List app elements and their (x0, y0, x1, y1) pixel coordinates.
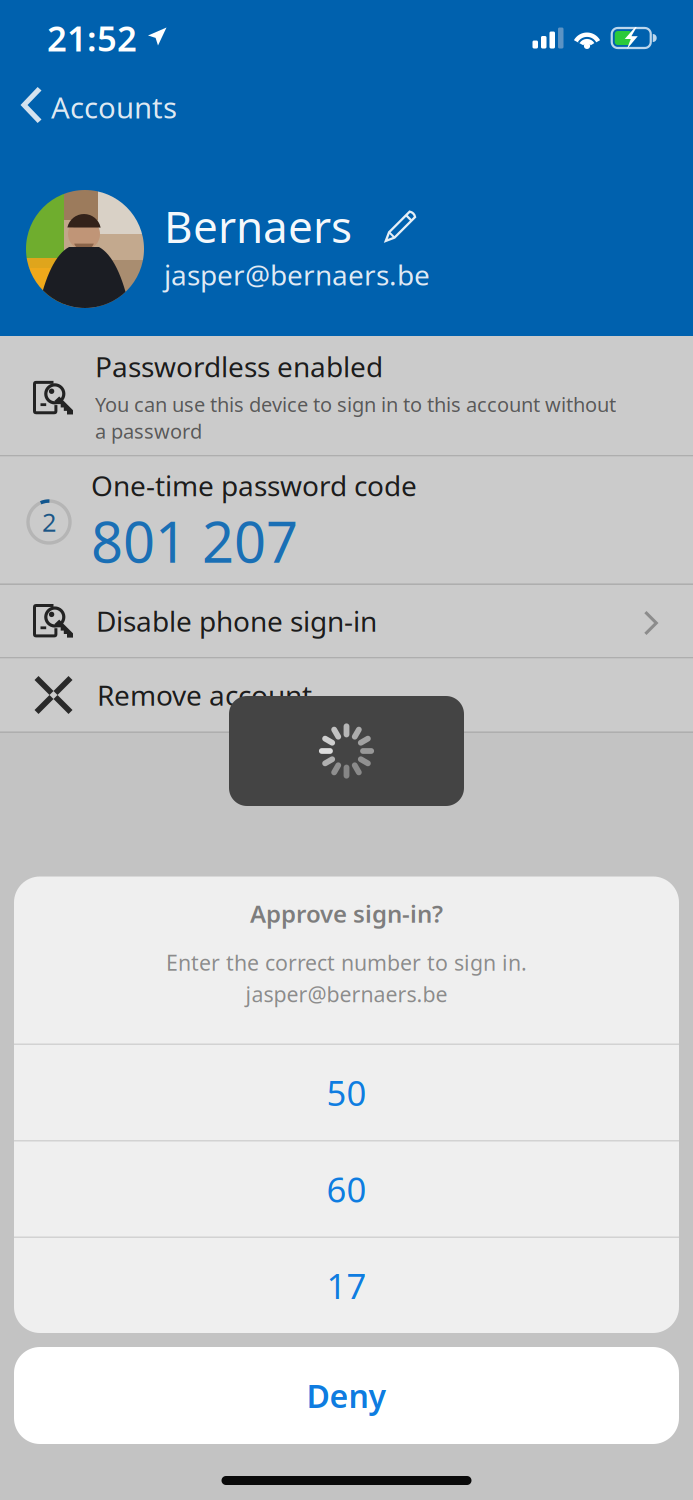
button[interactable]: 2 (0, 456, 693, 583)
button[interactable]: Disable phone sign-in (0, 585, 693, 657)
staticText: Remove account (97, 676, 312, 714)
staticText: Bernaers (164, 197, 352, 255)
staticText: Enter the correct number to sign in. (166, 948, 527, 977)
staticText: 801 207 (91, 504, 298, 578)
button[interactable]: Deny (14, 1347, 679, 1444)
staticText: Approve sign-in? (250, 897, 443, 929)
staticText: 50 (326, 1069, 366, 1115)
staticText: 60 (326, 1166, 366, 1212)
button[interactable]: 60 (14, 1141, 679, 1236)
staticText: Deny (306, 1374, 386, 1417)
button[interactable]: 17 (14, 1238, 679, 1333)
button[interactable]: Remove account (0, 658, 693, 731)
staticText: Accounts (51, 87, 177, 126)
staticText: 2 (42, 505, 56, 539)
staticText: 17 (326, 1262, 366, 1308)
staticText: You can use this device to sign in to th… (95, 391, 616, 444)
staticText: 21:52 (47, 15, 137, 61)
button[interactable]: Passwordless enabled (0, 336, 693, 455)
button[interactable]: Accounts (0, 76, 193, 138)
staticText: jasper@bernaers.be (245, 980, 447, 1008)
button[interactable]: 50 (14, 1045, 679, 1140)
staticText: jasper@bernaers.be (164, 256, 430, 293)
staticText: Passwordless enabled (95, 348, 383, 385)
staticText: Disable phone sign-in (96, 602, 377, 640)
button[interactable]: Rename account (381, 206, 421, 246)
staticText: One-time password code (91, 467, 417, 504)
